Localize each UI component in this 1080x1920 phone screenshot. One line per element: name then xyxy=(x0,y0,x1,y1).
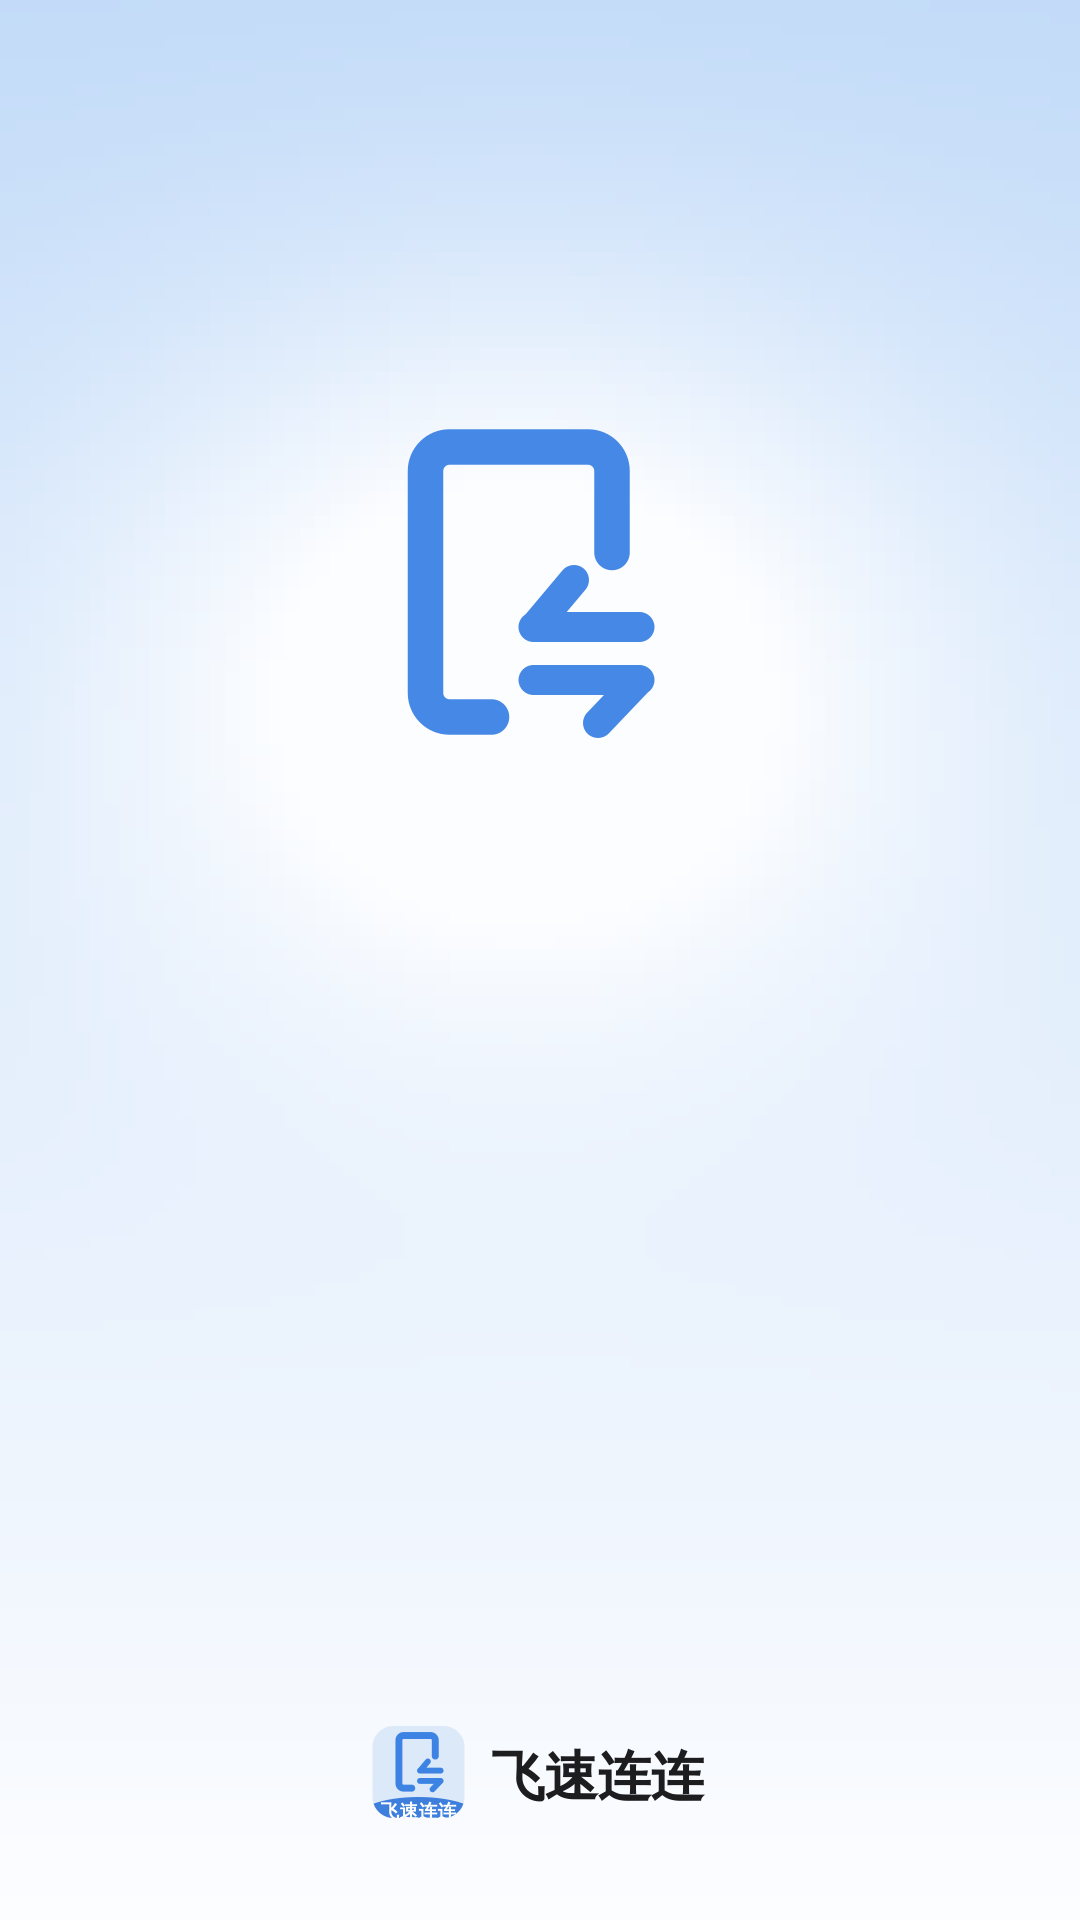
staticText: 飞速连连 xyxy=(491,1744,703,1810)
staticText: 飞速连连 xyxy=(380,1800,456,1823)
button[interactable]: 飞速连连 xyxy=(372,1726,703,1818)
